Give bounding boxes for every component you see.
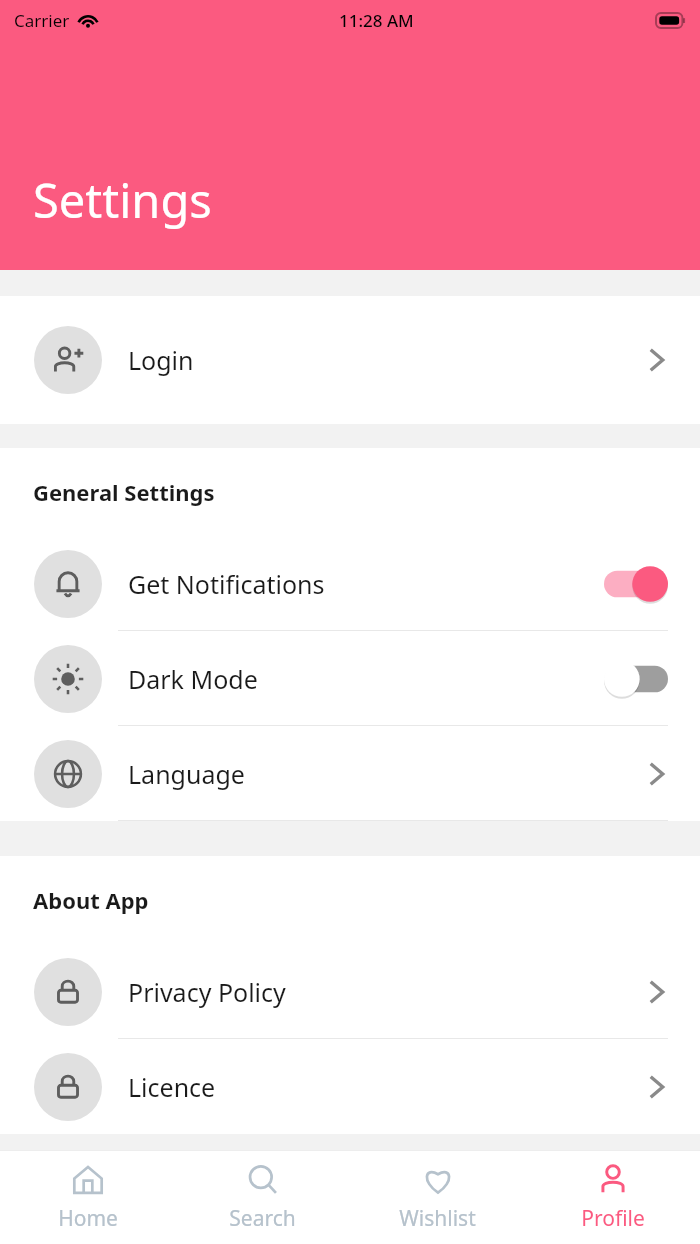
button[interactable]: Login: [0, 296, 700, 424]
staticText: Wishlist: [399, 1204, 476, 1233]
other: Open: [644, 343, 668, 377]
staticText: General Settings: [33, 477, 215, 507]
staticText: About App: [33, 885, 149, 915]
button[interactable]: Profile: [525, 1151, 700, 1244]
staticText: Dark Mode: [128, 662, 258, 696]
other: Open: [644, 757, 668, 791]
staticText: Login: [128, 343, 194, 377]
staticText: Search: [229, 1204, 296, 1233]
staticText: Home: [58, 1204, 118, 1233]
staticText: Get Notifications: [128, 567, 325, 601]
staticText: Licence: [128, 1070, 216, 1104]
button[interactable]: Home: [0, 1151, 175, 1244]
staticText: Language: [128, 757, 245, 791]
button[interactable]: Licence: [0, 1039, 700, 1134]
staticText: 11:28 AM: [339, 9, 414, 32]
button[interactable]: Search: [175, 1151, 350, 1244]
button[interactable]: Dark Mode: [0, 631, 700, 726]
button[interactable]: Get Notifications: [0, 536, 700, 631]
button[interactable]: Toggle on: [604, 565, 668, 603]
other: Open: [644, 975, 668, 1009]
other: Open: [644, 1070, 668, 1104]
staticText: Privacy Policy: [128, 975, 286, 1009]
staticText: Settings: [33, 168, 212, 232]
button[interactable]: Toggle off: [604, 660, 668, 698]
button[interactable]: Language: [0, 726, 700, 821]
staticText: Profile: [581, 1204, 645, 1233]
button[interactable]: Privacy Policy: [0, 944, 700, 1039]
staticText: Carrier: [14, 9, 70, 32]
button[interactable]: Wishlist: [350, 1151, 525, 1244]
